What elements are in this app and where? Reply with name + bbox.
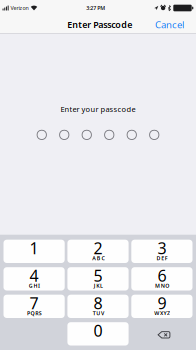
staticText: 1 bbox=[30, 237, 39, 259]
button[interactable]: 0 bbox=[67, 322, 129, 345]
staticText: 9 bbox=[157, 292, 166, 314]
button[interactable]: 8 bbox=[67, 295, 129, 318]
button[interactable]: Cancel bbox=[143, 14, 196, 35]
button[interactable]: 9 bbox=[131, 295, 192, 318]
button[interactable]: 6 bbox=[131, 267, 192, 290]
staticText: 3:27 PM bbox=[86, 4, 105, 12]
staticText: 5 bbox=[93, 265, 102, 286]
button[interactable]: 5 bbox=[67, 267, 129, 290]
staticText: 8 bbox=[93, 292, 102, 314]
staticText: DEF bbox=[157, 254, 168, 262]
staticText: JKL bbox=[94, 282, 103, 289]
staticText: 0 bbox=[93, 320, 102, 341]
staticText: Enter your passcode bbox=[60, 104, 135, 114]
button[interactable]: Delete bbox=[131, 322, 192, 345]
staticText: Enter Passcode bbox=[67, 18, 132, 31]
button[interactable]: 4 bbox=[3, 267, 65, 290]
staticText: TUV bbox=[93, 309, 104, 317]
staticText: 6 bbox=[157, 265, 166, 286]
staticText: GHI bbox=[29, 282, 40, 289]
staticText: ABC bbox=[92, 254, 104, 262]
staticText: 4 bbox=[30, 265, 39, 286]
staticText: 3 bbox=[157, 237, 166, 259]
button[interactable]: 3 bbox=[131, 240, 192, 263]
staticText: Cancel bbox=[155, 18, 184, 31]
staticText: PQRS bbox=[27, 309, 42, 317]
staticText: Verizon bbox=[10, 4, 28, 12]
staticText: 2 bbox=[93, 237, 102, 259]
button[interactable]: 7 bbox=[3, 295, 65, 318]
button[interactable]: 2 bbox=[67, 240, 129, 263]
button[interactable]: 1 bbox=[3, 240, 65, 263]
staticText: WXYZ bbox=[154, 309, 170, 317]
staticText: MNO bbox=[155, 282, 169, 289]
staticText: 7 bbox=[30, 292, 39, 314]
